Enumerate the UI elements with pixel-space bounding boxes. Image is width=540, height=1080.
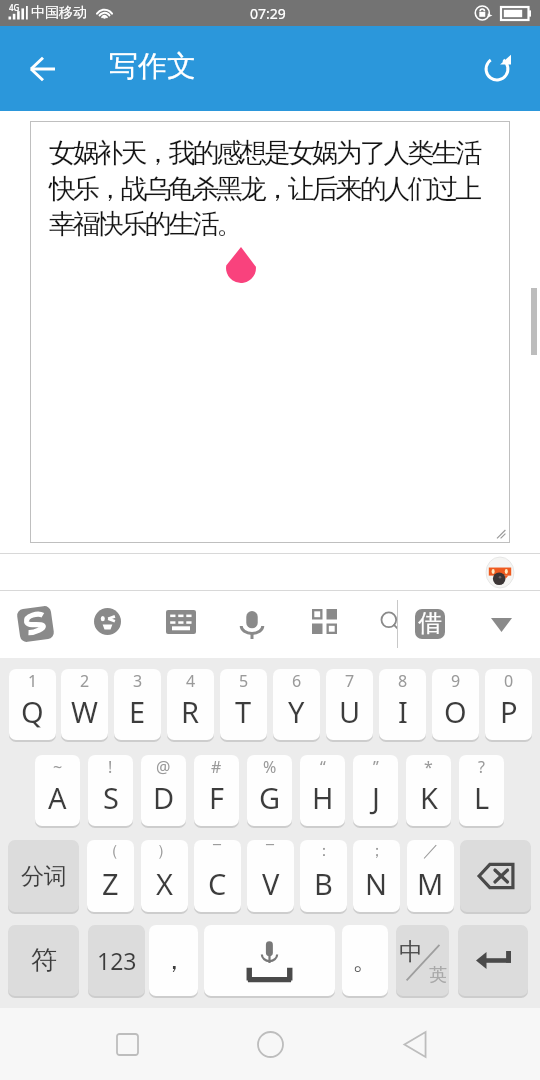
staticText: ” — [373, 756, 379, 778]
button[interactable]: 女娲补天，我的感想是女娲为了人类生活 快乐，战乌龟杀黑龙，让后来的人们过上 幸福… — [30, 121, 510, 543]
staticText: Q — [21, 692, 44, 731]
button[interactable]: Home — [240, 1014, 300, 1074]
button[interactable]: ¯ — [247, 840, 294, 912]
staticText: H — [312, 778, 334, 817]
button[interactable]: ） — [141, 840, 188, 912]
button[interactable]: Refresh — [471, 43, 523, 95]
staticText: 9 — [451, 670, 461, 692]
staticText: M — [417, 864, 444, 903]
staticText: S — [103, 778, 119, 817]
button[interactable]: Emoji — [85, 595, 130, 654]
button[interactable]: 7 — [326, 669, 373, 740]
staticText: ~ — [53, 756, 63, 778]
staticText: O — [444, 692, 467, 731]
staticText: I — [398, 692, 408, 731]
button[interactable]: * — [406, 755, 451, 826]
button[interactable]: 分词 — [8, 840, 79, 912]
staticText: P — [500, 692, 518, 731]
staticText: # — [211, 756, 222, 778]
staticText: 6 — [292, 670, 302, 692]
staticText: 女娲补天，我的感想是女娲为了人类生活 快乐，战乌龟杀黑龙，让后来的人们过上 幸福… — [49, 136, 480, 240]
staticText: B — [314, 864, 333, 903]
staticText: Y — [288, 692, 305, 731]
staticText: （ — [103, 841, 119, 861]
button[interactable]: Search — [371, 595, 410, 654]
button[interactable]: % — [247, 755, 292, 826]
staticText: 。 — [352, 944, 378, 977]
staticText: 07:29 — [250, 4, 286, 23]
button[interactable]: ” — [353, 755, 398, 826]
button[interactable]: 0 — [485, 669, 532, 740]
button[interactable]: ¯ — [194, 840, 241, 912]
button[interactable]: backspace — [460, 840, 531, 912]
staticText: 1 — [28, 670, 38, 692]
staticText: ／ — [423, 841, 439, 861]
staticText: F — [209, 778, 225, 817]
staticText: 4G — [9, 2, 20, 13]
staticText: D — [153, 778, 175, 817]
staticText: 8 — [398, 670, 408, 692]
button[interactable]: 4 — [167, 669, 214, 740]
staticText: V — [262, 864, 280, 903]
staticText: 分词 — [21, 862, 67, 891]
button[interactable]: 。 — [342, 925, 388, 996]
button[interactable]: Sogou input — [8, 595, 63, 654]
button[interactable]: 9 — [432, 669, 479, 740]
button[interactable]: 2 — [61, 669, 108, 740]
button[interactable]: ! — [88, 755, 133, 826]
staticText: C — [208, 864, 227, 903]
button[interactable]: ， — [149, 925, 198, 996]
staticText: 英 — [429, 964, 447, 987]
button[interactable]: cn_en — [396, 925, 449, 996]
staticText: ¯ — [266, 841, 275, 863]
button[interactable]: 1 — [9, 669, 56, 740]
staticText: “ — [320, 756, 326, 778]
button[interactable]: Keyboard layout — [157, 595, 205, 654]
staticText: X — [156, 864, 173, 903]
staticText: L — [474, 778, 490, 817]
button[interactable]: 8 — [379, 669, 426, 740]
button[interactable]: ~ — [35, 755, 80, 826]
button[interactable]: Recents — [97, 1014, 157, 1074]
button[interactable]: “ — [300, 755, 345, 826]
button[interactable]: 123 — [88, 925, 145, 996]
staticText: % — [263, 756, 277, 778]
button[interactable]: enter — [458, 925, 528, 996]
staticText: N — [365, 864, 388, 903]
staticText: Z — [102, 864, 119, 903]
button[interactable]: ； — [353, 840, 400, 912]
button[interactable]: @ — [141, 755, 186, 826]
staticText: 写作文 — [109, 48, 196, 85]
staticText: K — [420, 778, 438, 817]
button[interactable]: 6 — [273, 669, 320, 740]
staticText: * — [424, 756, 433, 778]
staticText: G — [259, 778, 281, 817]
staticText: 4 — [186, 670, 196, 692]
button[interactable]: More — [303, 595, 346, 654]
button[interactable]: ? — [459, 755, 504, 826]
button[interactable]: space — [204, 925, 335, 996]
staticText: ? — [478, 756, 485, 778]
button[interactable]: 借 — [415, 609, 445, 639]
button[interactable]: Hide keyboard — [481, 608, 521, 642]
staticText: ； — [369, 841, 385, 861]
staticText: 0 — [504, 670, 514, 692]
staticText: 5 — [239, 670, 249, 692]
staticText: ） — [157, 841, 173, 861]
button[interactable]: （ — [87, 840, 134, 912]
button[interactable]: 符 — [8, 925, 79, 996]
staticText: 中国移动 — [31, 4, 87, 22]
button[interactable]: # — [194, 755, 239, 826]
staticText: ， — [161, 944, 187, 977]
button[interactable]: Assistant — [486, 557, 514, 588]
button[interactable]: Voice input — [232, 595, 272, 654]
staticText: E — [129, 692, 146, 731]
button[interactable]: Back — [385, 1014, 445, 1074]
staticText: 7 — [345, 670, 355, 692]
button[interactable]: ／ — [407, 840, 454, 912]
button[interactable]: 5 — [220, 669, 267, 740]
button[interactable]: 3 — [114, 669, 161, 740]
button[interactable]: Back — [16, 43, 68, 95]
staticText: 2 — [80, 670, 90, 692]
button[interactable]: ： — [300, 840, 347, 912]
